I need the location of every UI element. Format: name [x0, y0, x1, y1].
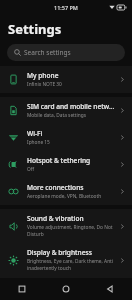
button[interactable]: More connections [0, 178, 132, 205]
staticText: Settings [8, 20, 62, 38]
staticText: Iphone 15 [27, 139, 50, 146]
staticText: Search settings [24, 48, 71, 57]
staticText: Hotspot & tethering [27, 156, 91, 165]
button[interactable]: Storage [0, 277, 132, 300]
staticText: My phone [27, 71, 59, 80]
button[interactable]: Home [44, 278, 88, 300]
staticText: Off [27, 166, 35, 173]
button[interactable]: Search settings [7, 44, 125, 61]
staticText: Wi-Fi [27, 129, 43, 138]
staticText: Aeroplane mode, VPN, Bluetooth [27, 193, 102, 200]
staticText: Display & brightness [27, 248, 92, 257]
staticText: 11:57 PM [54, 4, 78, 11]
button[interactable]: Sound & vibration [0, 209, 132, 243]
button[interactable]: My phone [0, 66, 132, 93]
staticText: Sound & vibration [27, 214, 84, 223]
button[interactable]: Display & brightness [0, 243, 132, 277]
staticText: Volume adjustment, Ringtone, Do Not Dist… [27, 224, 116, 238]
staticText: More connections [27, 183, 84, 192]
button[interactable]: Hotspot & tethering [0, 151, 132, 178]
staticText: Brightness, Eye care, Dark theme, Anti i… [27, 258, 116, 272]
button[interactable]: SIM card and mobile network [0, 97, 132, 124]
staticText: Mobile data, Data settings [27, 112, 87, 119]
staticText: Infinix NOTE 30 [27, 81, 62, 88]
staticText: SIM card and mobile network [27, 102, 116, 111]
button[interactable]: Recent apps [0, 278, 44, 300]
button[interactable]: Wi-Fi [0, 124, 132, 151]
button[interactable]: Back [88, 278, 132, 300]
